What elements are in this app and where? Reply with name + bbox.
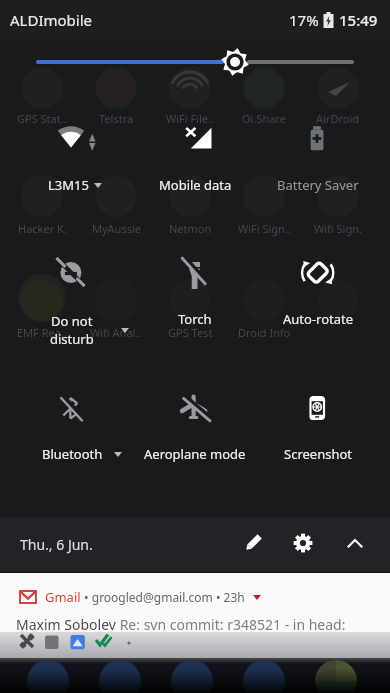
staticText: L3M15 bbox=[48, 176, 89, 194]
button[interactable]: Bluetooth bbox=[6, 378, 136, 494]
staticText: Netmon bbox=[169, 221, 212, 236]
staticText: Hacker K. bbox=[18, 221, 67, 236]
button[interactable]: Torch bbox=[130, 246, 260, 362]
staticText: Droid Info bbox=[238, 325, 291, 340]
button[interactable] bbox=[20, 42, 370, 82]
staticText: Oi.Share bbox=[242, 111, 286, 126]
button[interactable] bbox=[235, 525, 271, 561]
staticText: EMF Rea.. bbox=[17, 325, 67, 340]
staticText: • groogled@gmail.com • 23h bbox=[81, 589, 248, 605]
staticText: GPS Test bbox=[168, 325, 213, 340]
staticText: Wifi Anal.. bbox=[90, 325, 142, 340]
staticText: Bluetooth bbox=[42, 445, 103, 463]
staticText: Mobile data bbox=[159, 176, 232, 194]
staticText: Aeroplane mode bbox=[144, 445, 246, 463]
staticText: Auto-rotate bbox=[283, 310, 354, 328]
staticText: 15:49 bbox=[339, 10, 378, 30]
staticText: WiFi Sign.. bbox=[238, 221, 291, 236]
staticText: disturb bbox=[50, 330, 94, 348]
staticText: AirDroid bbox=[316, 111, 360, 126]
staticText: Do not bbox=[51, 312, 93, 330]
staticText: WiFi File.. bbox=[166, 111, 214, 126]
staticText: Battery Saver bbox=[277, 176, 359, 194]
staticText: Telstra bbox=[99, 111, 134, 126]
staticText: Thu., 6 Jun. bbox=[20, 535, 93, 554]
button[interactable]: Auto-rotate bbox=[253, 246, 383, 362]
staticText: Gmail bbox=[45, 588, 81, 606]
button[interactable]: Mobile data bbox=[130, 107, 260, 223]
button[interactable] bbox=[337, 525, 373, 561]
staticText: 17% bbox=[289, 10, 319, 30]
button[interactable]: Do not bbox=[6, 246, 136, 362]
staticText: ALDImobile bbox=[10, 10, 93, 30]
button[interactable]: Screenshot bbox=[253, 378, 383, 494]
button[interactable] bbox=[285, 525, 321, 561]
button[interactable]: Gmail bbox=[0, 573, 390, 632]
staticText: GPS Stat.. bbox=[17, 111, 67, 126]
staticText: Torch bbox=[178, 310, 212, 328]
staticText: Re: svn commit: r348521 - in head: bbox=[116, 615, 346, 634]
staticText: Maxim Sobolev bbox=[16, 615, 116, 634]
staticText: Wifi Sign. bbox=[314, 221, 362, 236]
staticText: Screenshot bbox=[284, 445, 353, 463]
button[interactable]: L3M15 bbox=[6, 107, 136, 223]
staticText: MyAussie bbox=[92, 221, 141, 236]
button[interactable]: Battery Saver bbox=[253, 107, 383, 223]
button[interactable]: Aeroplane mode bbox=[130, 378, 260, 494]
